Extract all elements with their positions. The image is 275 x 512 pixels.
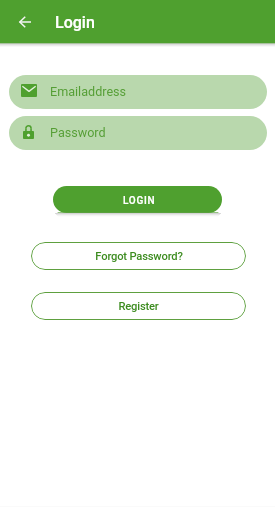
button[interactable]: LOGIN <box>53 186 222 213</box>
button[interactable]: Emailaddress <box>9 75 267 109</box>
button[interactable]: Register <box>31 292 246 320</box>
staticText: Register <box>118 300 159 313</box>
staticText: Forgot Password? <box>95 250 183 263</box>
staticText: Login <box>55 13 95 32</box>
button[interactable]: Forgot Password? <box>31 242 246 270</box>
staticText: LOGIN <box>123 195 156 207</box>
button[interactable]: Back <box>11 8 39 36</box>
staticText: Password <box>50 125 106 140</box>
staticText: Emailaddress <box>50 84 127 99</box>
button[interactable]: Password <box>9 116 267 150</box>
